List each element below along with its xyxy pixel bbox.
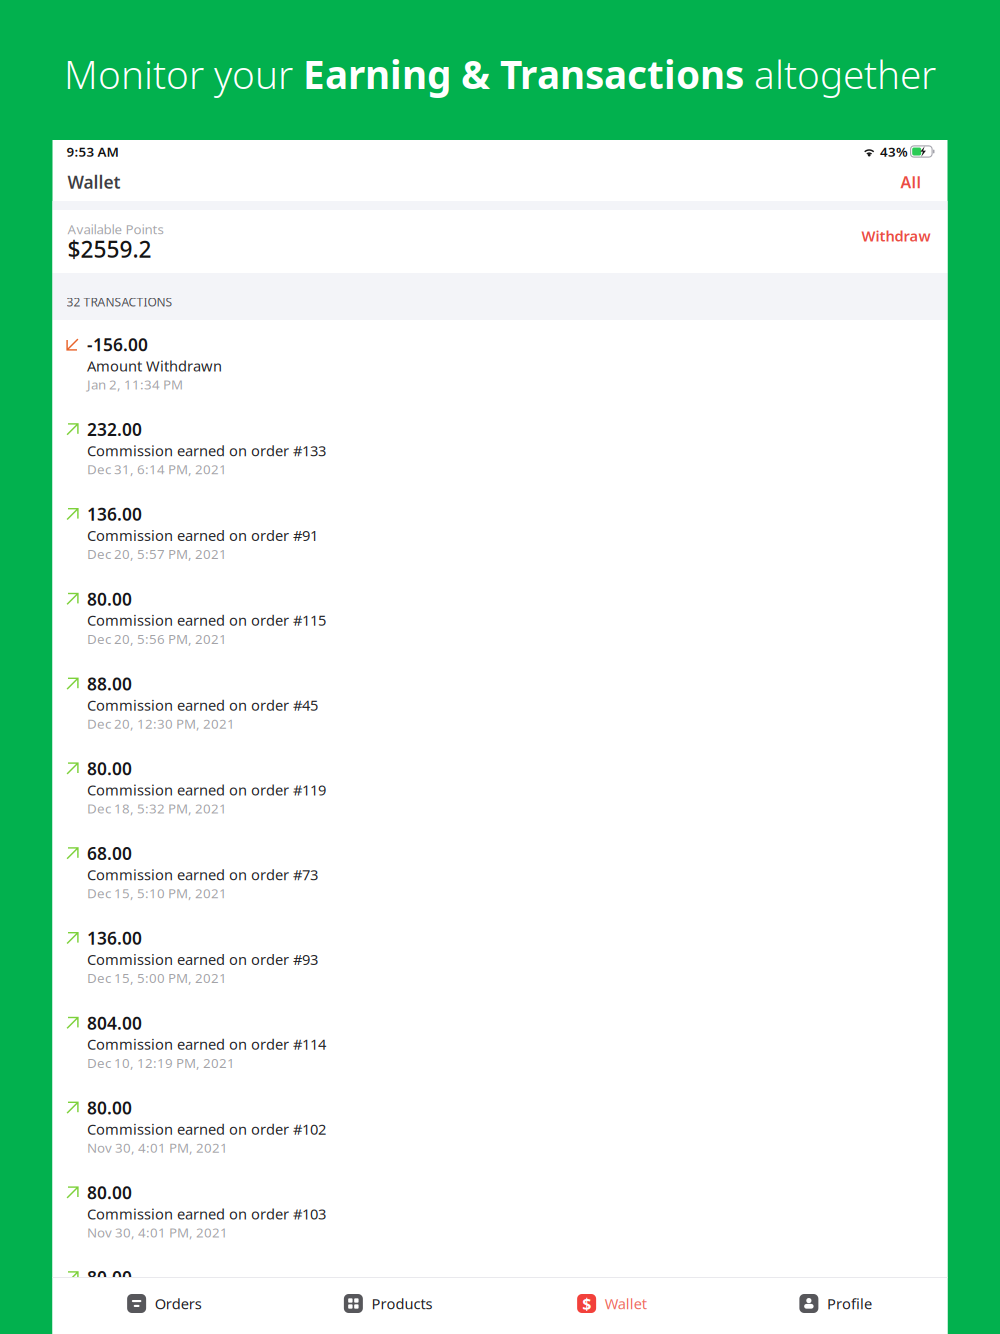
staticText: Commission earned on order #104 bbox=[87, 1289, 326, 1308]
staticText: Commission earned on order #119 bbox=[87, 780, 326, 799]
staticText: 80.00 bbox=[87, 1096, 132, 1119]
staticText: Commission earned on order #114 bbox=[87, 1034, 326, 1054]
staticText: 43% bbox=[880, 143, 908, 160]
staticText: 9:53 AM bbox=[66, 143, 118, 160]
button[interactable]: 136.00 bbox=[52, 490, 947, 574]
staticText: Commission earned on order #93 bbox=[87, 950, 318, 969]
button[interactable]: 80.00 bbox=[52, 574, 947, 659]
staticText: Wallet bbox=[67, 170, 120, 193]
staticText: Amount Withdrawn bbox=[87, 356, 222, 375]
button[interactable]: 232.00 bbox=[52, 405, 947, 490]
button[interactable]: 80.00 bbox=[52, 744, 947, 829]
button[interactable]: 88.00 bbox=[52, 659, 947, 744]
staticText: Earning & Transactions bbox=[303, 48, 744, 100]
button[interactable]: -156.00 bbox=[52, 320, 947, 405]
staticText: $ bbox=[582, 1293, 591, 1314]
staticText: -156.00 bbox=[87, 333, 148, 356]
staticText: 232.00 bbox=[87, 418, 142, 441]
staticText: Dec 15, 5:00 PM, 2021 bbox=[87, 969, 227, 987]
staticText: Nov 30, 4:01 PM, 2021 bbox=[87, 1223, 228, 1241]
staticText: 68.00 bbox=[87, 842, 132, 865]
staticText: Nov 30, 4:00 PM, 2021 bbox=[87, 1308, 228, 1326]
button[interactable]: 80.00 bbox=[52, 1253, 947, 1334]
staticText: Commission earned on order #102 bbox=[87, 1119, 326, 1139]
staticText: Available Points bbox=[67, 220, 163, 238]
staticText: All bbox=[900, 171, 921, 193]
staticText: Dec 18, 5:32 PM, 2021 bbox=[87, 799, 227, 817]
button[interactable]: 804.00 bbox=[52, 998, 947, 1083]
staticText: Commission earned on order #45 bbox=[87, 695, 318, 715]
button[interactable]: 68.00 bbox=[52, 829, 947, 914]
staticText: Commission earned on order #103 bbox=[87, 1204, 326, 1223]
staticText: Commission earned on order #115 bbox=[87, 610, 326, 630]
staticText: Jan 2, 11:34 PM bbox=[87, 375, 183, 393]
staticText: 80.00 bbox=[87, 1181, 132, 1204]
staticText: 804.00 bbox=[87, 1011, 142, 1034]
staticText: 32 TRANSACTIONS bbox=[66, 294, 172, 310]
button[interactable]: Products bbox=[276, 1277, 500, 1334]
staticText: Commission earned on order #133 bbox=[87, 441, 326, 460]
button[interactable]: Profile bbox=[724, 1277, 948, 1334]
staticText: 80.00 bbox=[87, 757, 132, 780]
staticText: Commission earned on order #91 bbox=[87, 526, 318, 545]
staticText: altogether bbox=[744, 48, 936, 100]
staticText: Dec 20, 5:57 PM, 2021 bbox=[87, 545, 227, 563]
button[interactable]: Orders bbox=[52, 1277, 276, 1334]
staticText: Products bbox=[371, 1294, 432, 1313]
staticText: 136.00 bbox=[87, 927, 142, 950]
button[interactable]: All bbox=[900, 171, 921, 193]
staticText: Profile bbox=[827, 1294, 872, 1313]
staticText: Dec 20, 12:30 PM, 2021 bbox=[87, 715, 235, 732]
button[interactable]: 80.00 bbox=[52, 1083, 947, 1168]
button[interactable]: 136.00 bbox=[52, 914, 947, 998]
staticText: 80.00 bbox=[87, 587, 132, 610]
staticText: Monitor your bbox=[64, 48, 303, 100]
button[interactable]: 80.00 bbox=[52, 1168, 947, 1253]
staticText: Dec 10, 12:19 PM, 2021 bbox=[87, 1054, 235, 1072]
staticText: Dec 20, 5:56 PM, 2021 bbox=[87, 630, 227, 648]
staticText: $2559.2 bbox=[67, 234, 151, 264]
staticText: Wallet bbox=[605, 1294, 647, 1313]
staticText: Commission earned on order #73 bbox=[87, 865, 318, 884]
button[interactable]: Withdraw bbox=[861, 221, 930, 245]
staticText: 80.00 bbox=[87, 1266, 132, 1289]
staticText: 136.00 bbox=[87, 503, 142, 526]
staticText: Nov 30, 4:01 PM, 2021 bbox=[87, 1139, 228, 1156]
button[interactable]: $ bbox=[500, 1277, 724, 1334]
staticText: Dec 31, 6:14 PM, 2021 bbox=[87, 460, 227, 478]
staticText: Dec 15, 5:10 PM, 2021 bbox=[87, 884, 227, 902]
staticText: Withdraw bbox=[861, 226, 930, 245]
staticText: 88.00 bbox=[87, 672, 132, 695]
staticText: Orders bbox=[155, 1294, 202, 1313]
